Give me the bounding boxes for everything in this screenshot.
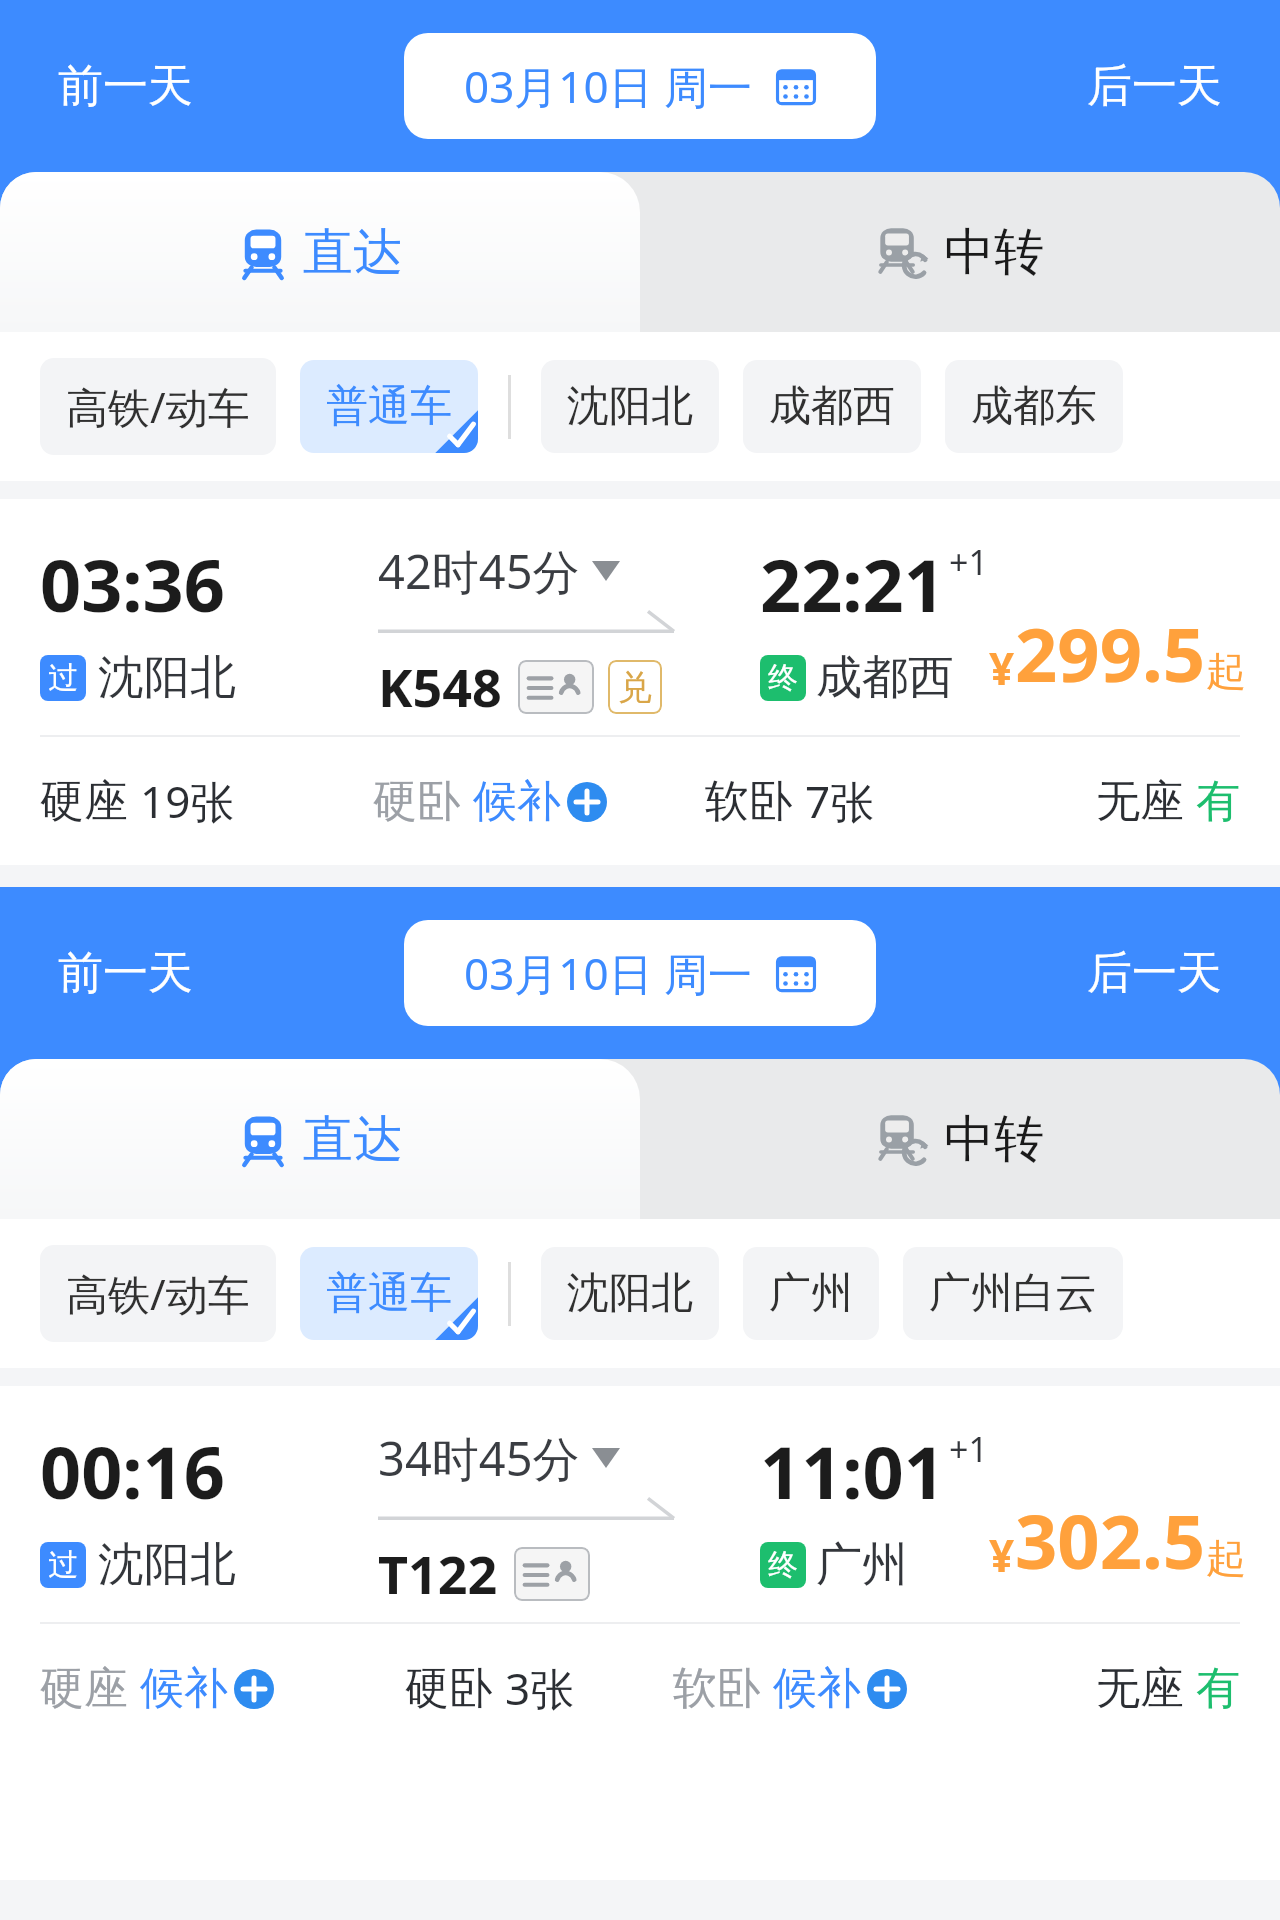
button[interactable]: 中转 bbox=[640, 172, 1280, 332]
button[interactable]: 前一天 bbox=[34, 887, 404, 1059]
staticText: 成都西 bbox=[769, 380, 895, 433]
staticText: 起 bbox=[1206, 1533, 1246, 1583]
staticText: 硬卧 bbox=[373, 774, 461, 829]
staticText: 候补 bbox=[140, 1661, 228, 1716]
staticText: 无座 bbox=[1096, 774, 1184, 829]
button[interactable]: 普通车 bbox=[300, 1247, 478, 1340]
staticText: 普通车 bbox=[326, 1267, 452, 1320]
staticText: 03月10日 周一 bbox=[464, 56, 753, 116]
staticText: 沈阳北 bbox=[567, 380, 693, 433]
button[interactable]: 普通车 bbox=[300, 360, 478, 453]
staticText: 过 bbox=[48, 1546, 78, 1584]
staticText: 无座 bbox=[1096, 1661, 1184, 1716]
staticText: 终 bbox=[768, 1546, 798, 1584]
button[interactable]: 00:16 bbox=[0, 1386, 1280, 1752]
staticText: 11:01 bbox=[760, 1422, 945, 1520]
staticText: 广州白云 bbox=[929, 1267, 1097, 1320]
staticText: 后一天 bbox=[1087, 945, 1222, 1002]
staticText: 中转 bbox=[944, 221, 1044, 284]
staticText: 22:21 bbox=[760, 535, 945, 633]
button[interactable]: 03月10日 周一 bbox=[404, 920, 876, 1026]
button[interactable]: 广州 bbox=[743, 1247, 879, 1340]
button[interactable]: 高铁/动车 bbox=[40, 1245, 276, 1342]
staticText: 有 bbox=[1196, 774, 1240, 829]
button[interactable]: 添加候补 bbox=[234, 1669, 274, 1709]
staticText: 硬座 bbox=[40, 774, 128, 829]
staticText: ¥ bbox=[989, 1525, 1015, 1585]
other: 日历 bbox=[775, 65, 817, 107]
staticText: 中转 bbox=[944, 1108, 1044, 1171]
button[interactable]: 中转 bbox=[640, 1059, 1280, 1219]
button[interactable]: 成都西 bbox=[743, 360, 921, 453]
button[interactable]: 沈阳北 bbox=[541, 1247, 719, 1340]
staticText: 起 bbox=[1206, 646, 1246, 696]
button[interactable]: 沈阳北 bbox=[541, 360, 719, 453]
staticText: 00:16 bbox=[40, 1422, 225, 1520]
button[interactable]: 高铁/动车 bbox=[40, 358, 276, 455]
other: 身份证核验 bbox=[518, 660, 594, 714]
staticText: 高铁/动车 bbox=[66, 1265, 250, 1322]
staticText: 终 bbox=[768, 659, 798, 697]
staticText: 软卧 bbox=[673, 1661, 761, 1716]
staticText: 高铁/动车 bbox=[66, 378, 250, 435]
staticText: 有 bbox=[1196, 1661, 1240, 1716]
staticText: 302.5 bbox=[1015, 1490, 1206, 1591]
button[interactable]: 直达 bbox=[0, 172, 640, 332]
staticText: 软卧 bbox=[705, 774, 793, 829]
staticText: 后一天 bbox=[1087, 58, 1222, 115]
staticText: 前一天 bbox=[58, 945, 193, 1002]
staticText: +1 bbox=[949, 1426, 988, 1472]
button[interactable]: 成都东 bbox=[945, 360, 1123, 453]
staticText: 3张 bbox=[505, 1658, 575, 1718]
staticText: 34时45分 bbox=[378, 1426, 580, 1490]
staticText: 普通车 bbox=[326, 380, 452, 433]
staticText: 兑 bbox=[618, 666, 652, 709]
staticText: 直达 bbox=[303, 221, 403, 284]
staticText: K548 bbox=[378, 651, 502, 722]
staticText: 299.5 bbox=[1015, 603, 1206, 704]
staticText: 硬卧 bbox=[405, 1661, 493, 1716]
staticText: T122 bbox=[378, 1538, 498, 1609]
staticText: 沈阳北 bbox=[567, 1267, 693, 1320]
staticText: 成都西 bbox=[816, 649, 954, 707]
button[interactable]: 03:36 bbox=[0, 499, 1280, 865]
staticText: 广州 bbox=[769, 1267, 853, 1320]
staticText: ¥ bbox=[989, 638, 1015, 698]
button[interactable]: 添加候补 bbox=[567, 782, 607, 822]
staticText: 广州 bbox=[816, 1536, 908, 1594]
button[interactable]: 03月10日 周一 bbox=[404, 33, 876, 139]
staticText: 候补 bbox=[473, 774, 561, 829]
button[interactable]: 后一天 bbox=[876, 0, 1246, 172]
button[interactable]: 直达 bbox=[0, 1059, 640, 1219]
other: 身份证核验 bbox=[514, 1547, 590, 1601]
staticText: 03:36 bbox=[40, 535, 225, 633]
staticText: +1 bbox=[949, 539, 988, 585]
staticText: 7张 bbox=[805, 771, 875, 831]
staticText: 沈阳北 bbox=[98, 1536, 236, 1594]
other: 兑换 bbox=[608, 660, 662, 714]
staticText: 直达 bbox=[303, 1108, 403, 1171]
other: 日历 bbox=[775, 952, 817, 994]
staticText: 19张 bbox=[140, 771, 235, 831]
button[interactable]: 前一天 bbox=[34, 0, 404, 172]
staticText: 候补 bbox=[773, 1661, 861, 1716]
staticText: 沈阳北 bbox=[98, 649, 236, 707]
button[interactable]: 后一天 bbox=[876, 887, 1246, 1059]
staticText: 03月10日 周一 bbox=[464, 943, 753, 1003]
staticText: 硬座 bbox=[40, 1661, 128, 1716]
staticText: 过 bbox=[48, 659, 78, 697]
staticText: 42时45分 bbox=[378, 539, 580, 603]
button[interactable]: 添加候补 bbox=[867, 1669, 907, 1709]
staticText: 前一天 bbox=[58, 58, 193, 115]
staticText: 成都东 bbox=[971, 380, 1097, 433]
button[interactable]: 广州白云 bbox=[903, 1247, 1123, 1340]
